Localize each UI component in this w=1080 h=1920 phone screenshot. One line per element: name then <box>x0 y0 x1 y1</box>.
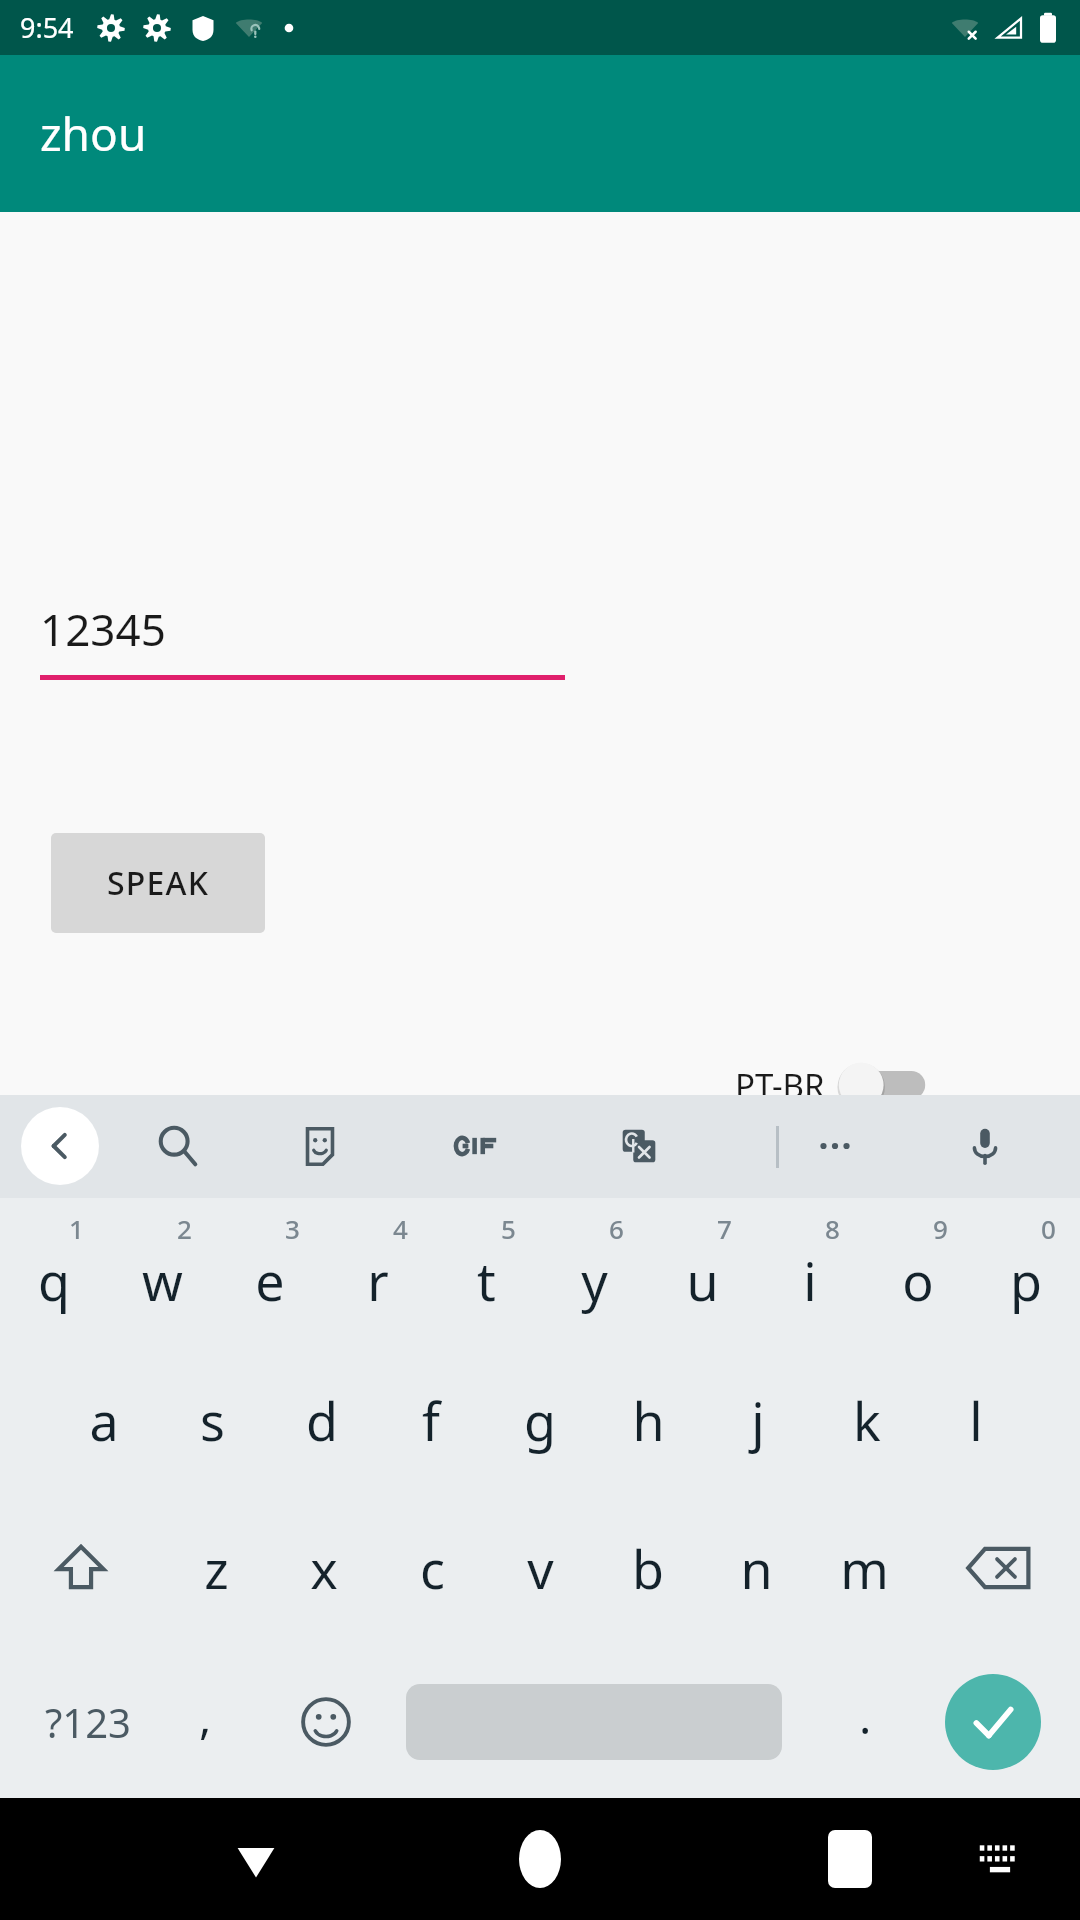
staticText: g <box>524 1385 556 1456</box>
button[interactable]: 3 <box>216 1198 324 1346</box>
button[interactable]: h <box>594 1346 703 1494</box>
button[interactable]: b <box>594 1494 702 1642</box>
button[interactable]: n <box>702 1494 810 1642</box>
button[interactable]: More options <box>796 1107 874 1185</box>
button[interactable]: Recent apps <box>780 1798 920 1920</box>
staticText: w <box>142 1245 183 1316</box>
staticText: u <box>686 1245 719 1316</box>
button[interactable]: ?123 <box>18 1642 158 1802</box>
staticText: 7 <box>717 1211 732 1246</box>
button[interactable]: Home <box>470 1798 610 1920</box>
button[interactable]: Backspace <box>918 1494 1080 1642</box>
staticText: 6 <box>609 1211 624 1246</box>
staticText: d <box>306 1385 338 1456</box>
staticText: z <box>204 1533 229 1604</box>
button[interactable]: 0 <box>972 1198 1080 1346</box>
staticText: x <box>310 1533 338 1604</box>
staticText: PT-BR <box>735 1063 825 1108</box>
staticText: c <box>420 1533 445 1604</box>
staticText: y <box>581 1245 608 1316</box>
staticText: 0 <box>1041 1211 1056 1246</box>
button[interactable]: Search <box>139 1107 217 1185</box>
button[interactable]: PT-BR <box>735 1057 927 1113</box>
button[interactable]: GIF <box>438 1107 516 1185</box>
staticText: i <box>803 1245 817 1316</box>
button[interactable]: SPEAK <box>51 833 265 933</box>
button[interactable]: g <box>485 1346 594 1494</box>
button[interactable]: 7 <box>648 1198 756 1346</box>
staticText: p <box>1010 1245 1042 1316</box>
staticText: j <box>751 1385 765 1456</box>
button[interactable]: 12345 <box>40 599 565 680</box>
staticText: 8 <box>825 1211 840 1246</box>
staticText: o <box>902 1245 934 1316</box>
staticText: a <box>89 1385 119 1456</box>
button[interactable]: c <box>378 1494 486 1642</box>
staticText: k <box>853 1385 881 1456</box>
staticText: 9 <box>933 1211 948 1246</box>
button[interactable]: . <box>820 1642 910 1802</box>
button[interactable]: Stickers <box>281 1107 359 1185</box>
button[interactable]: Shift <box>0 1494 162 1642</box>
button[interactable]: d <box>267 1346 376 1494</box>
staticText: 4 <box>393 1211 408 1246</box>
staticText: f <box>422 1385 440 1456</box>
staticText: e <box>255 1245 285 1316</box>
button[interactable]: j <box>703 1346 812 1494</box>
staticText: l <box>969 1385 983 1456</box>
staticText: n <box>740 1533 773 1604</box>
staticText: t <box>477 1245 496 1316</box>
staticText: ?123 <box>45 1695 131 1749</box>
button[interactable]: l <box>921 1346 1030 1494</box>
button[interactable]: , <box>160 1642 250 1802</box>
staticText: 1 <box>69 1211 84 1246</box>
button[interactable]: s <box>158 1346 267 1494</box>
button[interactable]: k <box>812 1346 921 1494</box>
staticText: b <box>632 1533 664 1604</box>
staticText: zhou <box>40 102 147 165</box>
staticText: 3 <box>285 1211 300 1246</box>
button[interactable]: Done <box>945 1674 1041 1770</box>
button[interactable]: x <box>270 1494 378 1642</box>
staticText: m <box>840 1533 889 1604</box>
button[interactable]: Emoji <box>278 1642 374 1802</box>
staticText: SPEAK <box>107 861 210 905</box>
staticText: 12345 <box>40 599 166 659</box>
button[interactable]: Switch keyboard <box>955 1798 1045 1920</box>
button[interactable]: 2 <box>108 1198 216 1346</box>
staticText: 2 <box>177 1211 192 1246</box>
staticText: 9:54 <box>20 9 74 46</box>
button[interactable]: Voice input <box>946 1107 1024 1185</box>
button[interactable]: 6 <box>540 1198 648 1346</box>
button[interactable]: Translate <box>600 1107 678 1185</box>
button[interactable]: 5 <box>432 1198 540 1346</box>
staticText: 5 <box>501 1211 516 1246</box>
staticText: q <box>38 1245 70 1316</box>
button[interactable]: v <box>486 1494 594 1642</box>
button[interactable]: 8 <box>756 1198 864 1346</box>
staticText: , <box>199 1685 212 1748</box>
button[interactable]: 4 <box>324 1198 432 1346</box>
button[interactable]: 9 <box>864 1198 972 1346</box>
button[interactable]: f <box>376 1346 485 1494</box>
button[interactable]: a <box>50 1346 158 1494</box>
staticText: h <box>632 1385 665 1456</box>
button[interactable]: Back <box>21 1107 99 1185</box>
staticText: r <box>367 1245 389 1316</box>
button[interactable]: m <box>810 1494 918 1642</box>
button[interactable]: 1 <box>0 1198 108 1346</box>
button[interactable]: Hide keyboard <box>186 1798 326 1920</box>
button[interactable]: z <box>162 1494 270 1642</box>
staticText: v <box>527 1533 554 1604</box>
staticText: s <box>200 1385 225 1456</box>
staticText: . <box>859 1685 872 1748</box>
